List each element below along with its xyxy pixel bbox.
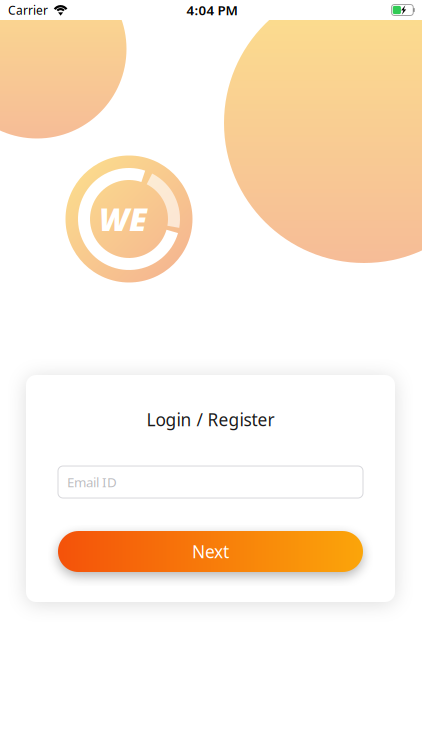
staticText: Login / Register bbox=[146, 408, 274, 431]
staticText: Email ID bbox=[67, 473, 117, 491]
button[interactable]: Email ID bbox=[58, 466, 363, 498]
staticText: 4:04 PM bbox=[186, 1, 237, 19]
staticText: WE bbox=[99, 198, 147, 240]
staticText: Carrier bbox=[8, 2, 48, 18]
staticText: Next bbox=[192, 540, 229, 563]
button[interactable]: Next bbox=[58, 531, 363, 572]
